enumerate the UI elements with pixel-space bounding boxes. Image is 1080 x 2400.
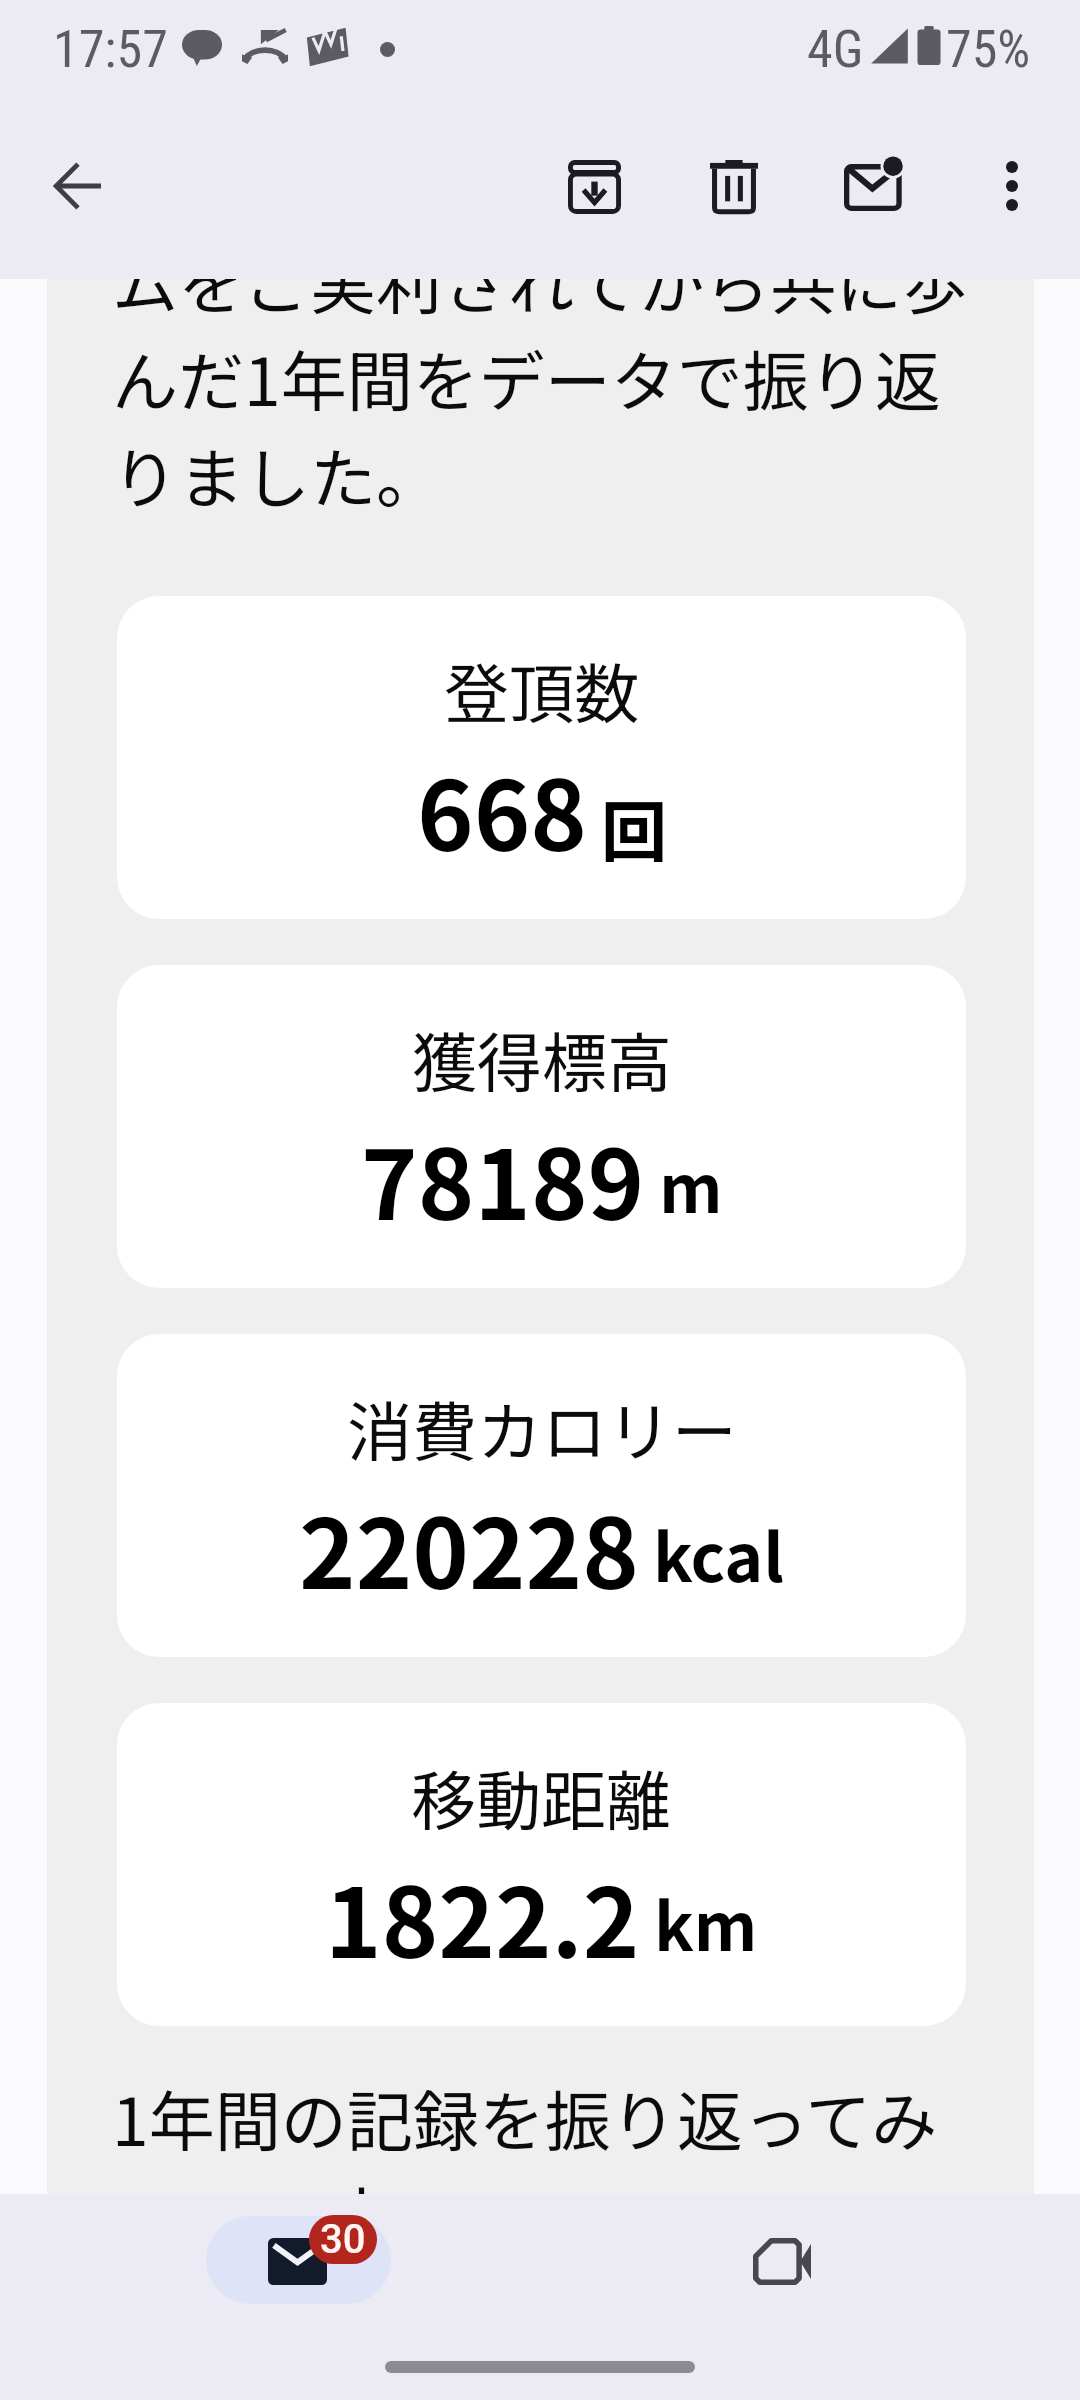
staticText: 30 <box>320 2216 366 2263</box>
staticText: 220228 <box>299 1478 639 1617</box>
button[interactable]: More options <box>980 135 1044 237</box>
staticText: kcal <box>653 1505 785 1601</box>
staticText: m <box>659 1136 723 1232</box>
button[interactable]: Mark as unread <box>818 132 928 237</box>
staticText: 回 <box>601 779 667 875</box>
button[interactable]: 移動距離 <box>117 1703 966 2026</box>
staticText: 1年間の記録を振り返ってみ つつつ.十 <box>112 2069 938 2194</box>
button[interactable]: 登頂数 <box>117 596 966 919</box>
button[interactable]: Mail, 30 unread <box>162 2197 435 2309</box>
button[interactable]: Back <box>29 137 127 235</box>
staticText: 17:57 <box>53 19 168 80</box>
staticText: ムをご実利されてから共に歩 んだ1年間をデータで振り返 りました。 <box>112 279 969 522</box>
button[interactable]: Delete <box>684 134 784 239</box>
staticText: 4G <box>807 19 864 80</box>
staticText: 移動距離 <box>411 1750 672 1844</box>
staticText: 登頂数 <box>444 643 640 737</box>
staticText: 獲得標高 <box>412 1012 673 1106</box>
staticText: 75% <box>946 19 1031 80</box>
button[interactable]: 獲得標高 <box>117 965 966 1288</box>
button[interactable]: Archive <box>542 134 647 240</box>
staticText: km <box>654 1874 758 1970</box>
button[interactable]: 消費カロリー <box>117 1334 966 1657</box>
staticText: 消費カロリー <box>347 1381 738 1475</box>
button[interactable]: Meet <box>645 2197 918 2309</box>
staticText: 668 <box>417 740 587 879</box>
staticText: 78189 <box>361 1109 645 1248</box>
staticText: 1822.2 <box>325 1847 640 1986</box>
